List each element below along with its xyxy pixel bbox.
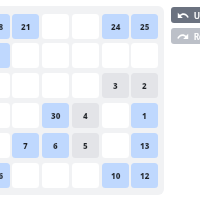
staticText: 118 — [0, 21, 4, 32]
button[interactable]: 13 — [131, 133, 158, 158]
staticText: 5 — [83, 140, 88, 151]
staticText: 12 — [140, 170, 150, 181]
staticText: 3 — [113, 80, 118, 91]
button[interactable]: 9 — [0, 43, 10, 68]
staticText: 116 — [0, 170, 4, 181]
button[interactable]: 30 — [42, 103, 69, 128]
staticText: 13 — [140, 140, 150, 151]
staticText: 24 — [111, 21, 121, 32]
button[interactable]: 2 — [131, 73, 158, 98]
button[interactable]: 10 — [102, 163, 129, 188]
button[interactable]: Redo — [171, 28, 200, 44]
button[interactable]: 118 — [0, 14, 10, 39]
button[interactable]: 3 — [102, 73, 129, 98]
button[interactable]: 24 — [102, 14, 129, 39]
staticText: Redo — [194, 31, 200, 42]
button[interactable]: 7 — [12, 133, 39, 158]
button[interactable]: 6 — [42, 133, 69, 158]
button[interactable]: 12 — [131, 163, 158, 188]
staticText: 4 — [83, 110, 88, 121]
staticText: 2 — [142, 80, 147, 91]
staticText: 25 — [140, 21, 150, 32]
staticText: 6 — [53, 140, 58, 151]
staticText: 30 — [51, 110, 61, 121]
button[interactable]: 4 — [72, 103, 99, 128]
staticText: Undo — [194, 10, 200, 21]
staticText: 7 — [23, 140, 28, 151]
button[interactable]: 1 — [131, 103, 158, 128]
button[interactable]: 25 — [131, 14, 158, 39]
staticText: 10 — [111, 170, 121, 181]
button[interactable]: Undo — [171, 7, 200, 23]
button[interactable]: 21 — [12, 14, 39, 39]
button[interactable]: 116 — [0, 163, 10, 188]
button[interactable]: 5 — [72, 133, 99, 158]
staticText: 21 — [21, 21, 31, 32]
staticText: 1 — [142, 110, 147, 121]
